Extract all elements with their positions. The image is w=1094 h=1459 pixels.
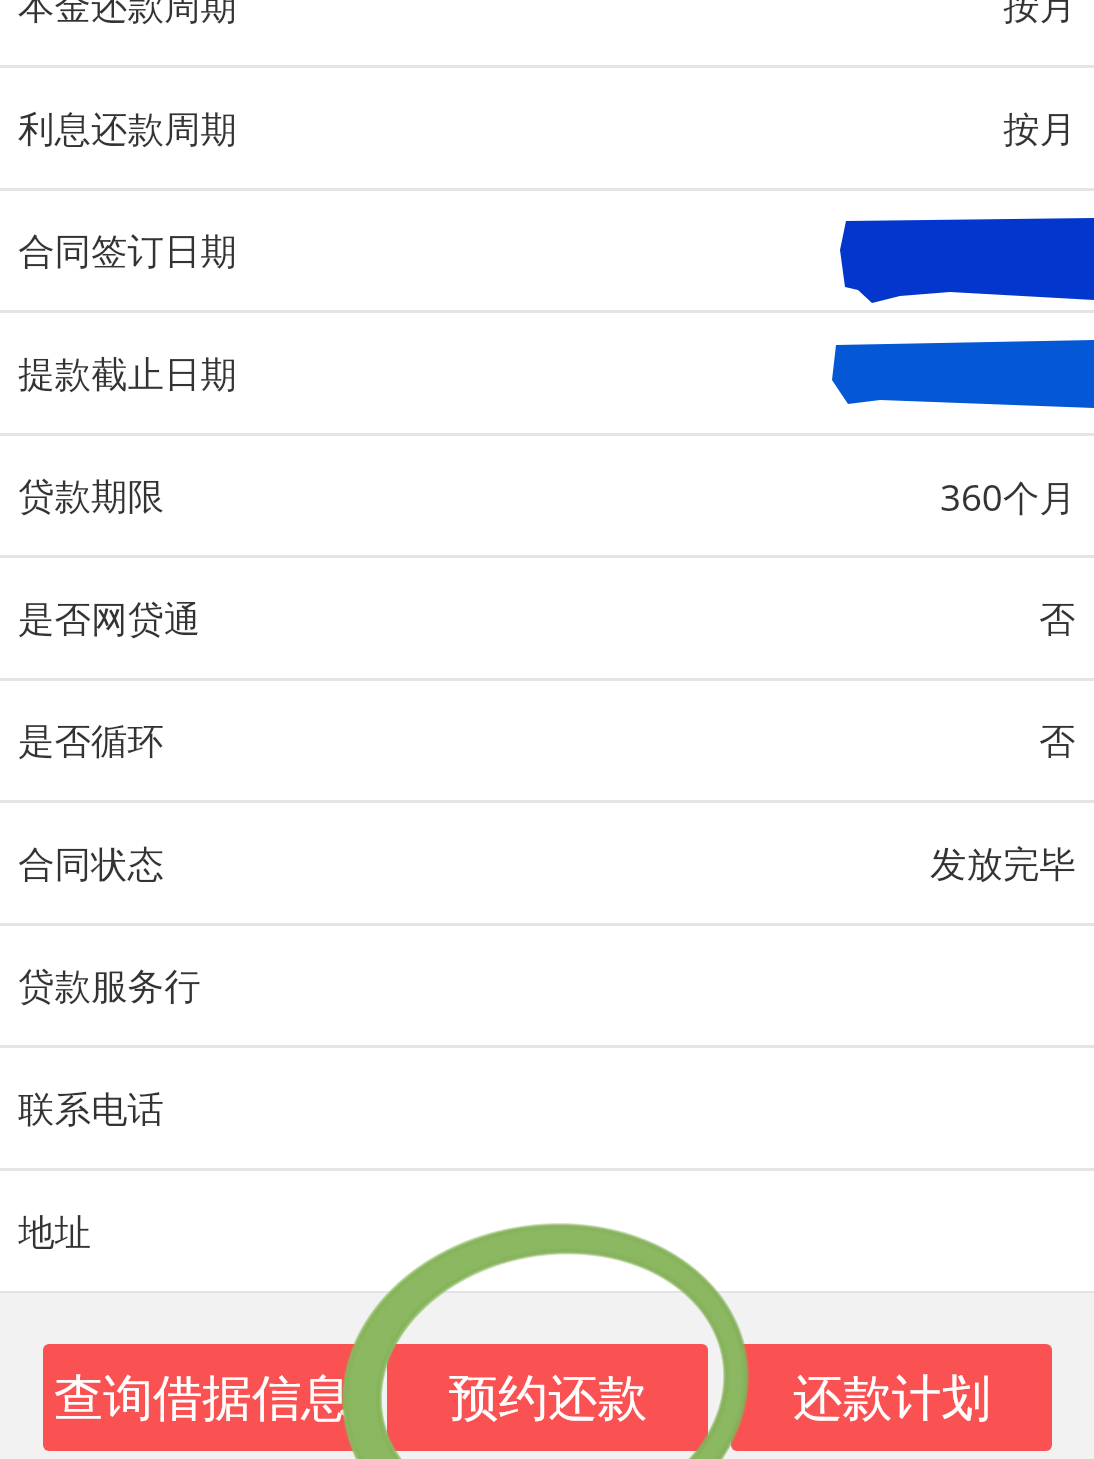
staticText: 360个月: [940, 472, 1076, 522]
staticText: 提款截止日期: [18, 352, 237, 398]
staticText: 按月: [1003, 0, 1076, 30]
staticText: 合同状态: [18, 842, 164, 888]
button[interactable]: 是否网贷通: [0, 558, 1094, 681]
staticText: 查询借据信息: [54, 1367, 351, 1429]
staticText: 联系电话: [18, 1087, 164, 1133]
staticText: 贷款期限: [18, 474, 164, 520]
button[interactable]: 查询借据信息: [43, 1344, 361, 1451]
button[interactable]: 还款计划: [731, 1344, 1052, 1451]
staticText: 是否网贷通: [18, 597, 201, 643]
staticText: 按月: [1003, 107, 1076, 153]
staticText: 利息还款周期: [18, 107, 237, 153]
button[interactable]: 本金还款周期: [0, 0, 1094, 68]
staticText: 还款计划: [793, 1367, 991, 1429]
staticText: 否: [1039, 597, 1076, 643]
button[interactable]: 地址: [0, 1171, 1094, 1294]
staticText: 发放完毕: [930, 842, 1076, 888]
button[interactable]: 合同签订日期: [0, 190, 1094, 313]
button[interactable]: 是否循环: [0, 680, 1094, 803]
button[interactable]: 合同状态: [0, 803, 1094, 926]
staticText: 本金还款周期: [18, 0, 237, 30]
staticText: 贷款服务行: [18, 964, 201, 1010]
button[interactable]: 贷款期限: [0, 435, 1094, 558]
button[interactable]: 贷款服务行: [0, 925, 1094, 1048]
button[interactable]: 提款截止日期: [0, 313, 1094, 436]
button[interactable]: 预约还款: [387, 1344, 708, 1451]
staticText: 否: [1039, 719, 1076, 765]
staticText: 合同签订日期: [18, 229, 237, 275]
staticText: 预约还款: [449, 1367, 647, 1429]
button[interactable]: 联系电话: [0, 1048, 1094, 1171]
staticText: 地址: [18, 1210, 91, 1256]
staticText: 是否循环: [18, 719, 164, 765]
button[interactable]: 利息还款周期: [0, 68, 1094, 191]
